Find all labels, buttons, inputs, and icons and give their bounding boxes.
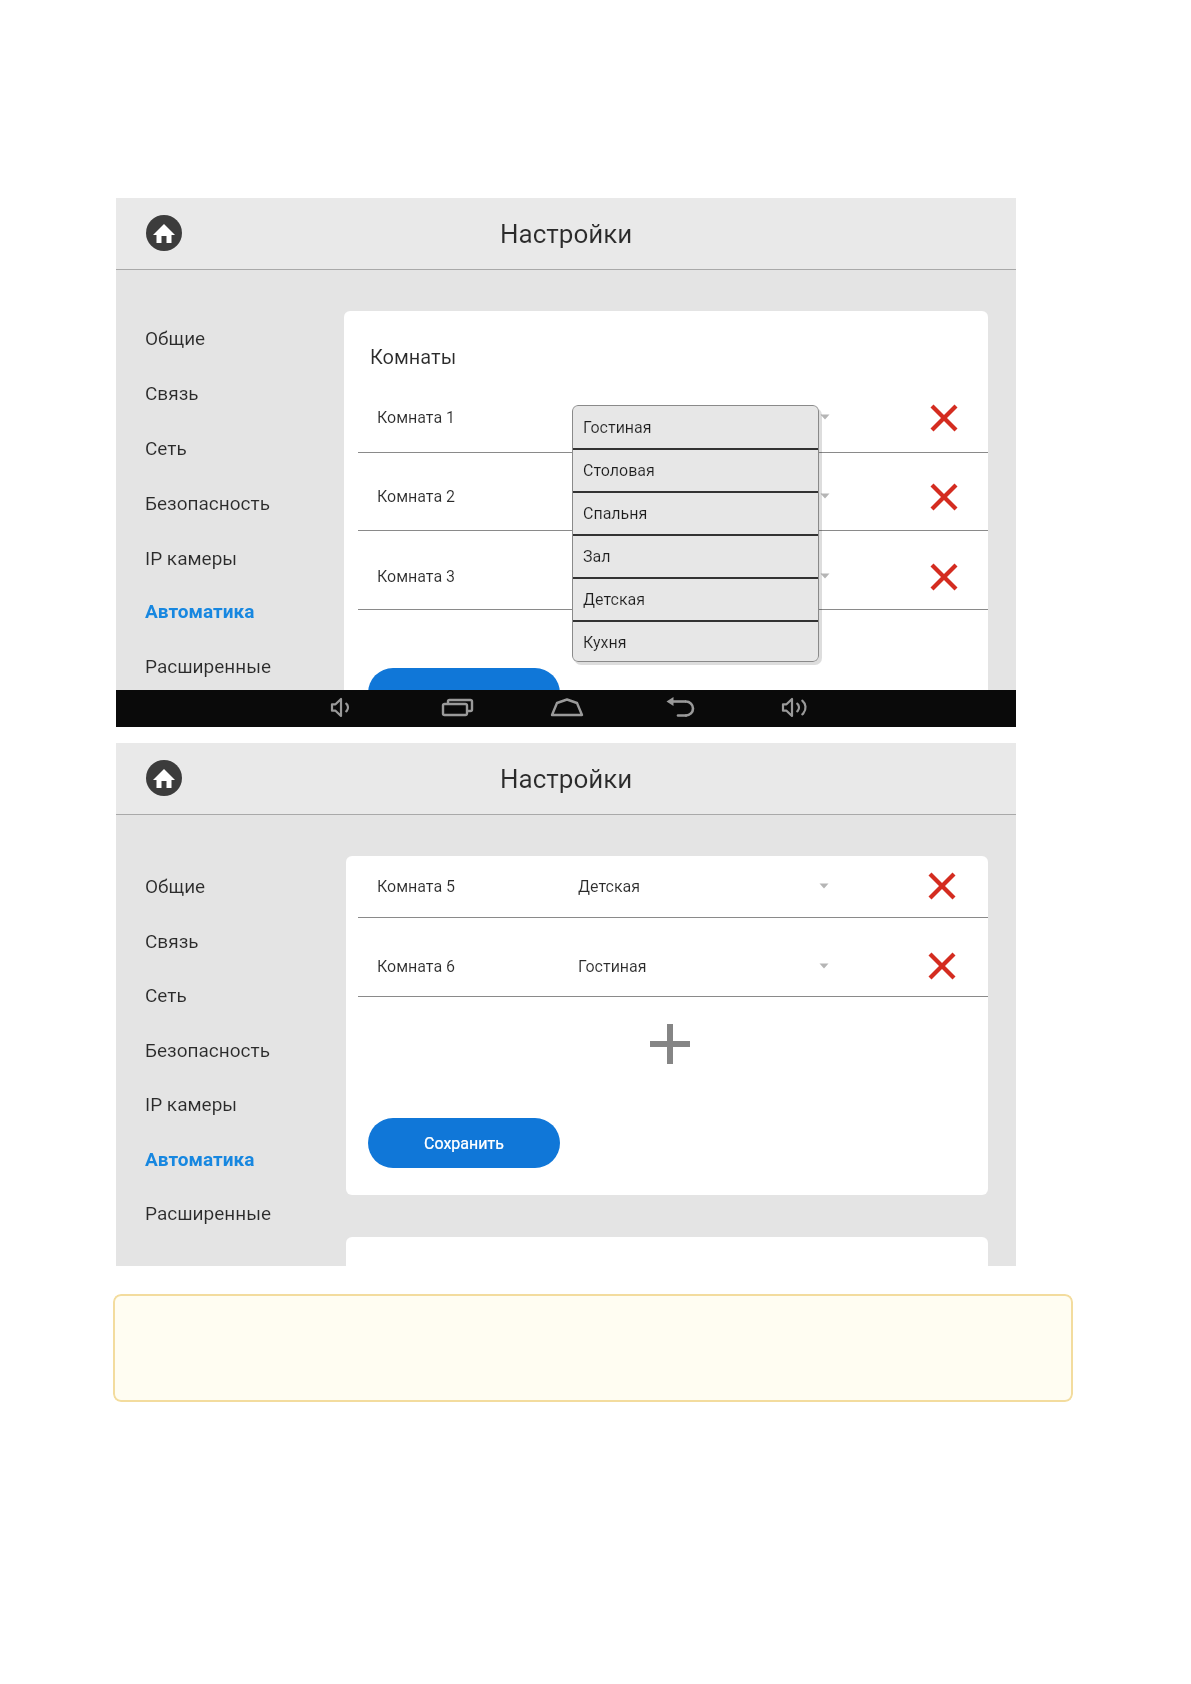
staticText: Комната 2 xyxy=(377,487,456,506)
staticText: Кухня xyxy=(583,633,627,652)
staticText: Сохранить xyxy=(424,1134,504,1153)
staticText: Гостиная xyxy=(578,957,647,976)
staticText: Связь xyxy=(145,382,199,404)
staticText: Комната 1 xyxy=(377,408,456,427)
staticText: Комната 3 xyxy=(377,567,456,586)
staticText: IP камеры xyxy=(145,1093,238,1115)
staticText: Столовая xyxy=(583,461,655,480)
staticText: Комната 6 xyxy=(377,957,456,976)
staticText: Сеть xyxy=(145,437,187,459)
staticText: Общие xyxy=(145,875,206,897)
staticText: Расширенные xyxy=(145,655,271,677)
staticText: Сеть xyxy=(145,984,187,1006)
staticText: Комнаты xyxy=(370,345,457,368)
staticText: Спальня xyxy=(583,504,648,523)
staticText: Детская xyxy=(578,877,641,896)
staticText: Связь xyxy=(145,930,199,952)
staticText: Расширенные xyxy=(145,1202,271,1224)
staticText: Автоматика xyxy=(145,1148,255,1170)
staticText: Настройки xyxy=(500,219,633,249)
staticText: Зал xyxy=(583,547,611,566)
staticText: Настройки xyxy=(500,764,633,794)
staticText: Автоматика xyxy=(145,600,255,622)
staticText: Безопасность xyxy=(145,1039,270,1061)
staticText: Безопасность xyxy=(145,492,270,514)
staticText: Детская xyxy=(583,590,646,609)
staticText: IP камеры xyxy=(145,547,238,569)
staticText: Гостиная xyxy=(583,418,652,437)
staticText: Общие xyxy=(145,327,206,349)
staticText: Комната 5 xyxy=(377,877,456,896)
